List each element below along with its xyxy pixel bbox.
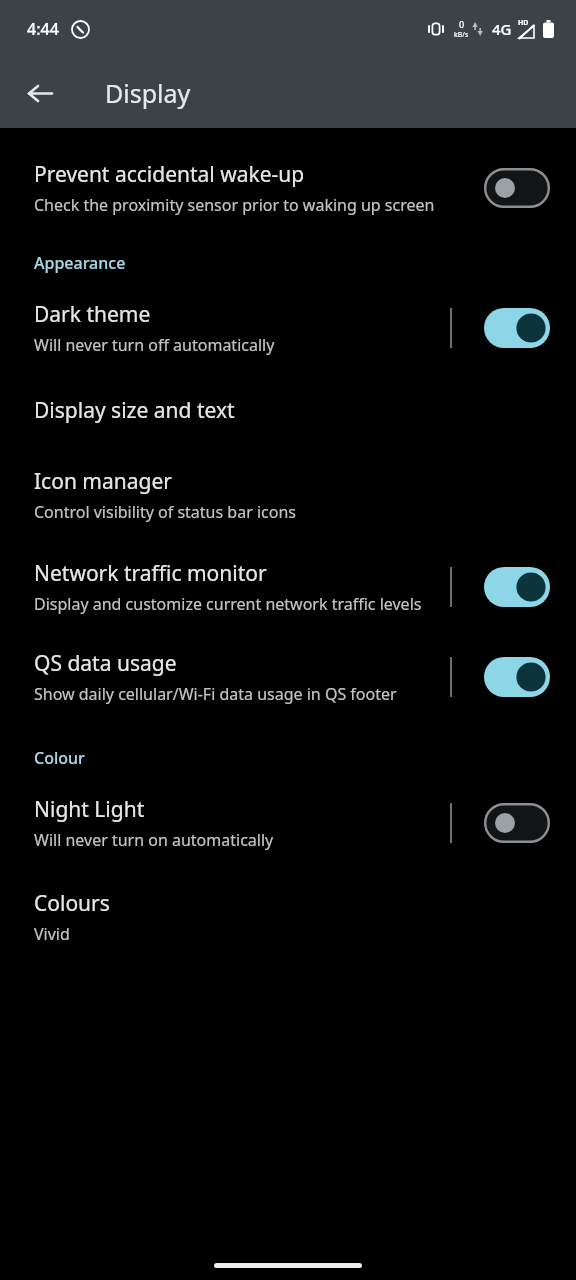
button[interactable]: Prevent accidental wake-up [484,168,550,208]
staticText: Show daily cellular/Wi-Fi data usage in … [34,683,397,705]
staticText: 4G [492,19,512,39]
staticText: Colours [34,889,110,918]
staticText: Prevent accidental wake-up [34,160,305,189]
staticText: Icon manager [34,467,172,496]
staticText: Display [105,76,191,110]
button[interactable]: Dark theme [484,308,550,348]
button[interactable]: QS data usage [484,657,550,697]
button[interactable]: QS data usage [0,649,576,705]
staticText: HD [518,18,529,28]
button[interactable]: Display size and text [0,396,576,425]
button[interactable]: Network traffic monitor [0,559,576,615]
staticText: Will never turn off automatically [34,334,275,356]
staticText: Vivid [34,923,70,945]
staticText: kB/s [454,30,469,40]
button[interactable]: Prevent accidental wake-up [0,160,576,216]
staticText: Appearance [34,252,126,274]
staticText: Check the proximity sensor prior to waki… [34,194,435,216]
button[interactable]: Back [14,67,66,119]
button[interactable]: Colours [0,889,576,945]
staticText: Control visibility of status bar icons [34,501,296,523]
button[interactable]: Dark theme [0,300,576,356]
staticText: 4:44 [27,18,59,40]
button[interactable]: Network traffic monitor [484,567,550,607]
staticText: Network traffic monitor [34,559,267,588]
staticText: Display and customize current network tr… [34,593,422,615]
staticText: Dark theme [34,300,151,329]
staticText: Colour [34,747,85,769]
button[interactable]: Night Light [484,803,550,843]
staticText: Will never turn on automatically [34,829,274,851]
button[interactable]: Icon manager [0,467,576,523]
staticText: Display size and text [34,396,235,425]
staticText: Night Light [34,795,145,824]
staticText: 0 [459,18,465,30]
button[interactable]: Night Light [0,795,576,851]
staticText: QS data usage [34,649,177,678]
